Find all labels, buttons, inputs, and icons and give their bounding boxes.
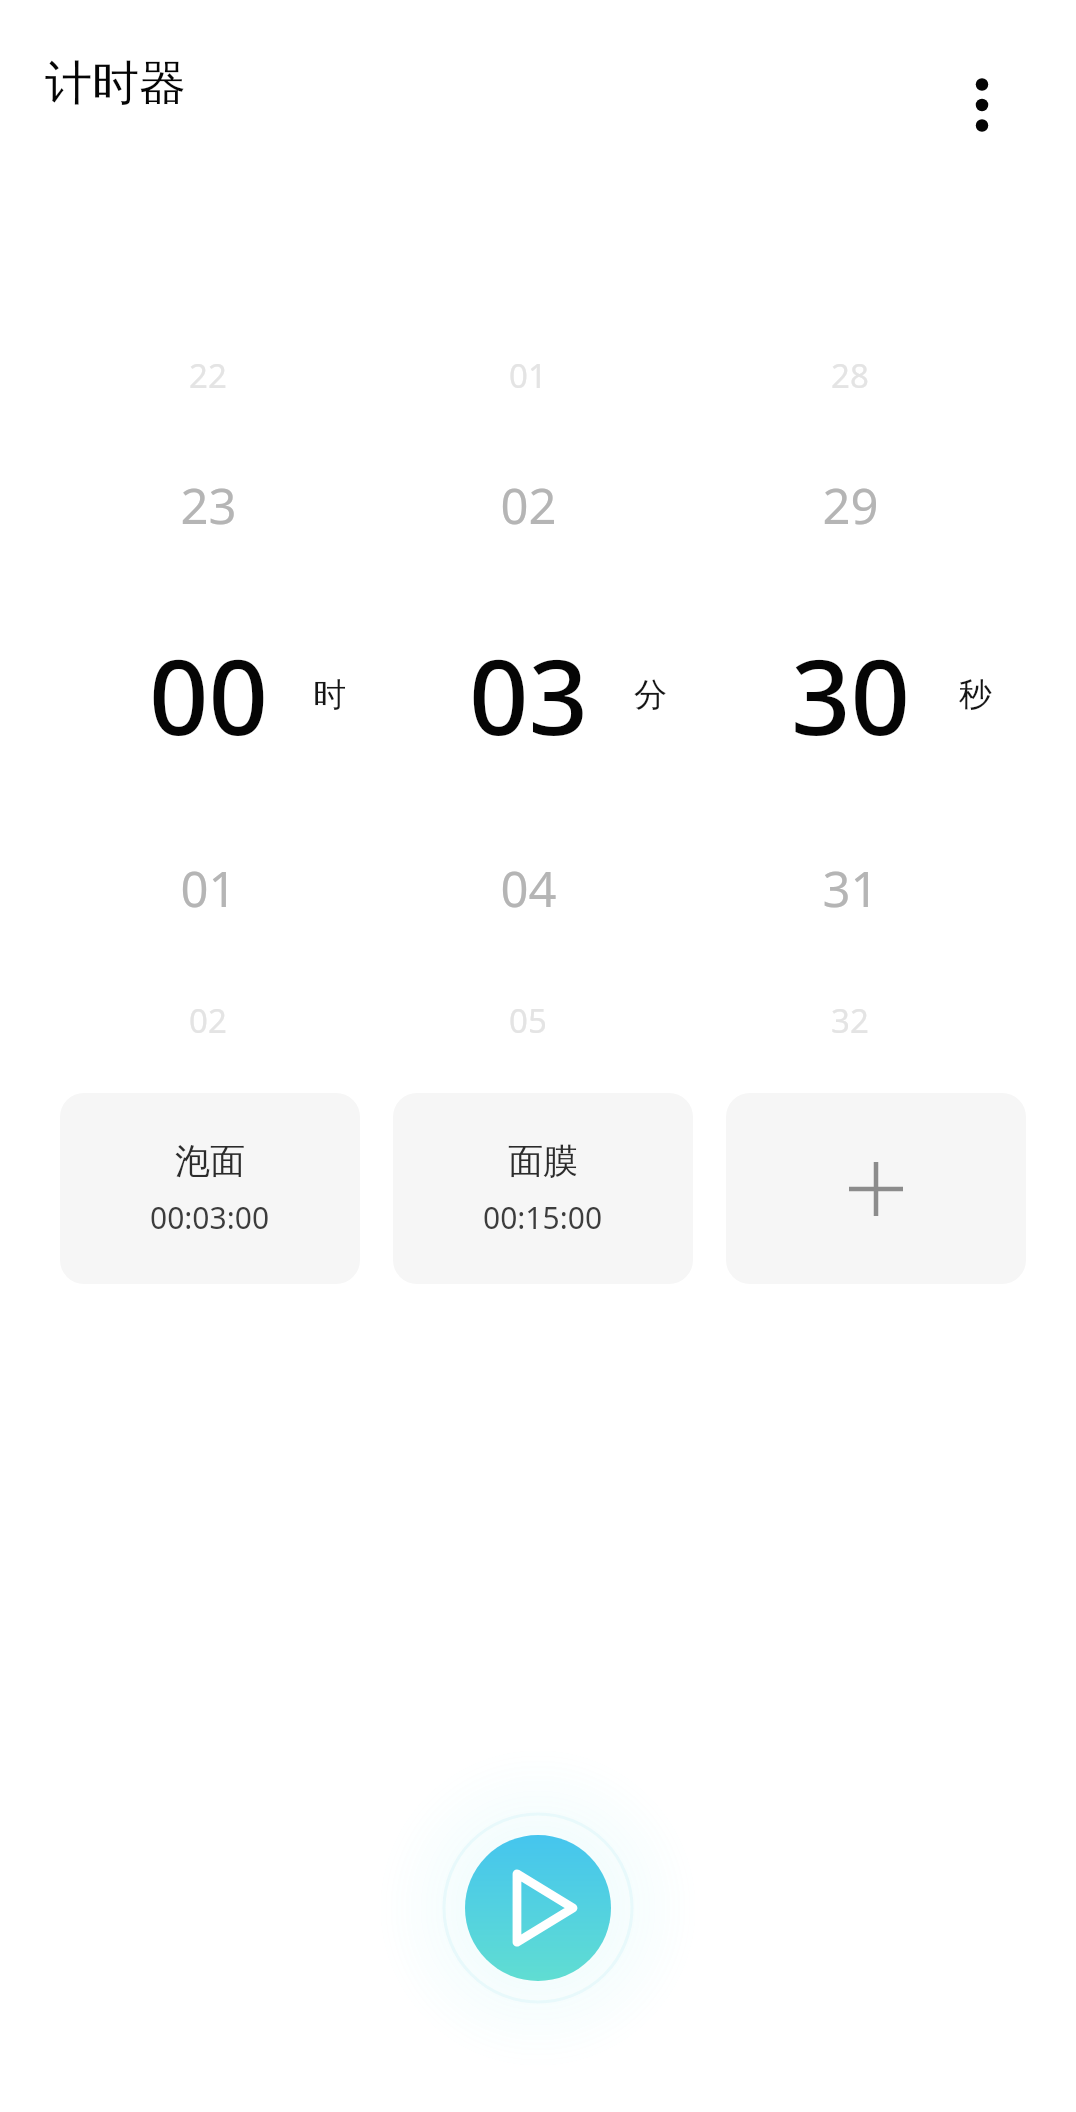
button[interactable]: 05 [428, 940, 628, 1100]
button[interactable]: 04 [428, 808, 628, 968]
button[interactable]: Start timer [378, 1748, 698, 2068]
staticText: 泡面 [175, 1139, 245, 1183]
button[interactable]: 面膜 [393, 1093, 693, 1284]
staticText: 分 [634, 674, 667, 716]
button[interactable]: 03 [428, 615, 628, 775]
staticText: 03 [469, 624, 588, 766]
button[interactable]: Add preset timer [726, 1093, 1026, 1284]
staticText: 计时器 [45, 54, 186, 113]
staticText: 00:03:00 [150, 1197, 270, 1238]
staticText: 05 [509, 998, 547, 1043]
staticText: 面膜 [508, 1139, 578, 1183]
button[interactable]: 30 [750, 615, 950, 775]
staticText: 02 [500, 472, 557, 539]
button[interactable]: 01 [108, 808, 308, 968]
button[interactable]: 00 [108, 615, 308, 775]
staticText: 30 [791, 624, 910, 766]
staticText: 00 [149, 624, 268, 766]
button[interactable]: 泡面 [60, 1093, 360, 1284]
staticText: 04 [500, 855, 557, 922]
staticText: 01 [509, 353, 547, 398]
button[interactable]: More options [942, 65, 1022, 145]
button[interactable]: 02 [428, 425, 628, 585]
staticText: 时 [313, 674, 346, 716]
staticText: 02 [189, 998, 227, 1043]
staticText: 秒 [959, 674, 992, 716]
staticText: 29 [822, 472, 879, 539]
button[interactable]: 31 [750, 808, 950, 968]
button[interactable]: 29 [750, 425, 950, 585]
staticText: 28 [831, 353, 869, 398]
staticText: 01 [180, 855, 237, 922]
staticText: 23 [180, 472, 237, 539]
button[interactable]: 02 [108, 940, 308, 1100]
staticText: 32 [831, 998, 869, 1043]
button[interactable]: 32 [750, 940, 950, 1100]
staticText: 00:15:00 [483, 1197, 603, 1238]
staticText: 31 [822, 855, 879, 922]
button[interactable]: 23 [108, 425, 308, 585]
staticText: 22 [189, 353, 227, 398]
